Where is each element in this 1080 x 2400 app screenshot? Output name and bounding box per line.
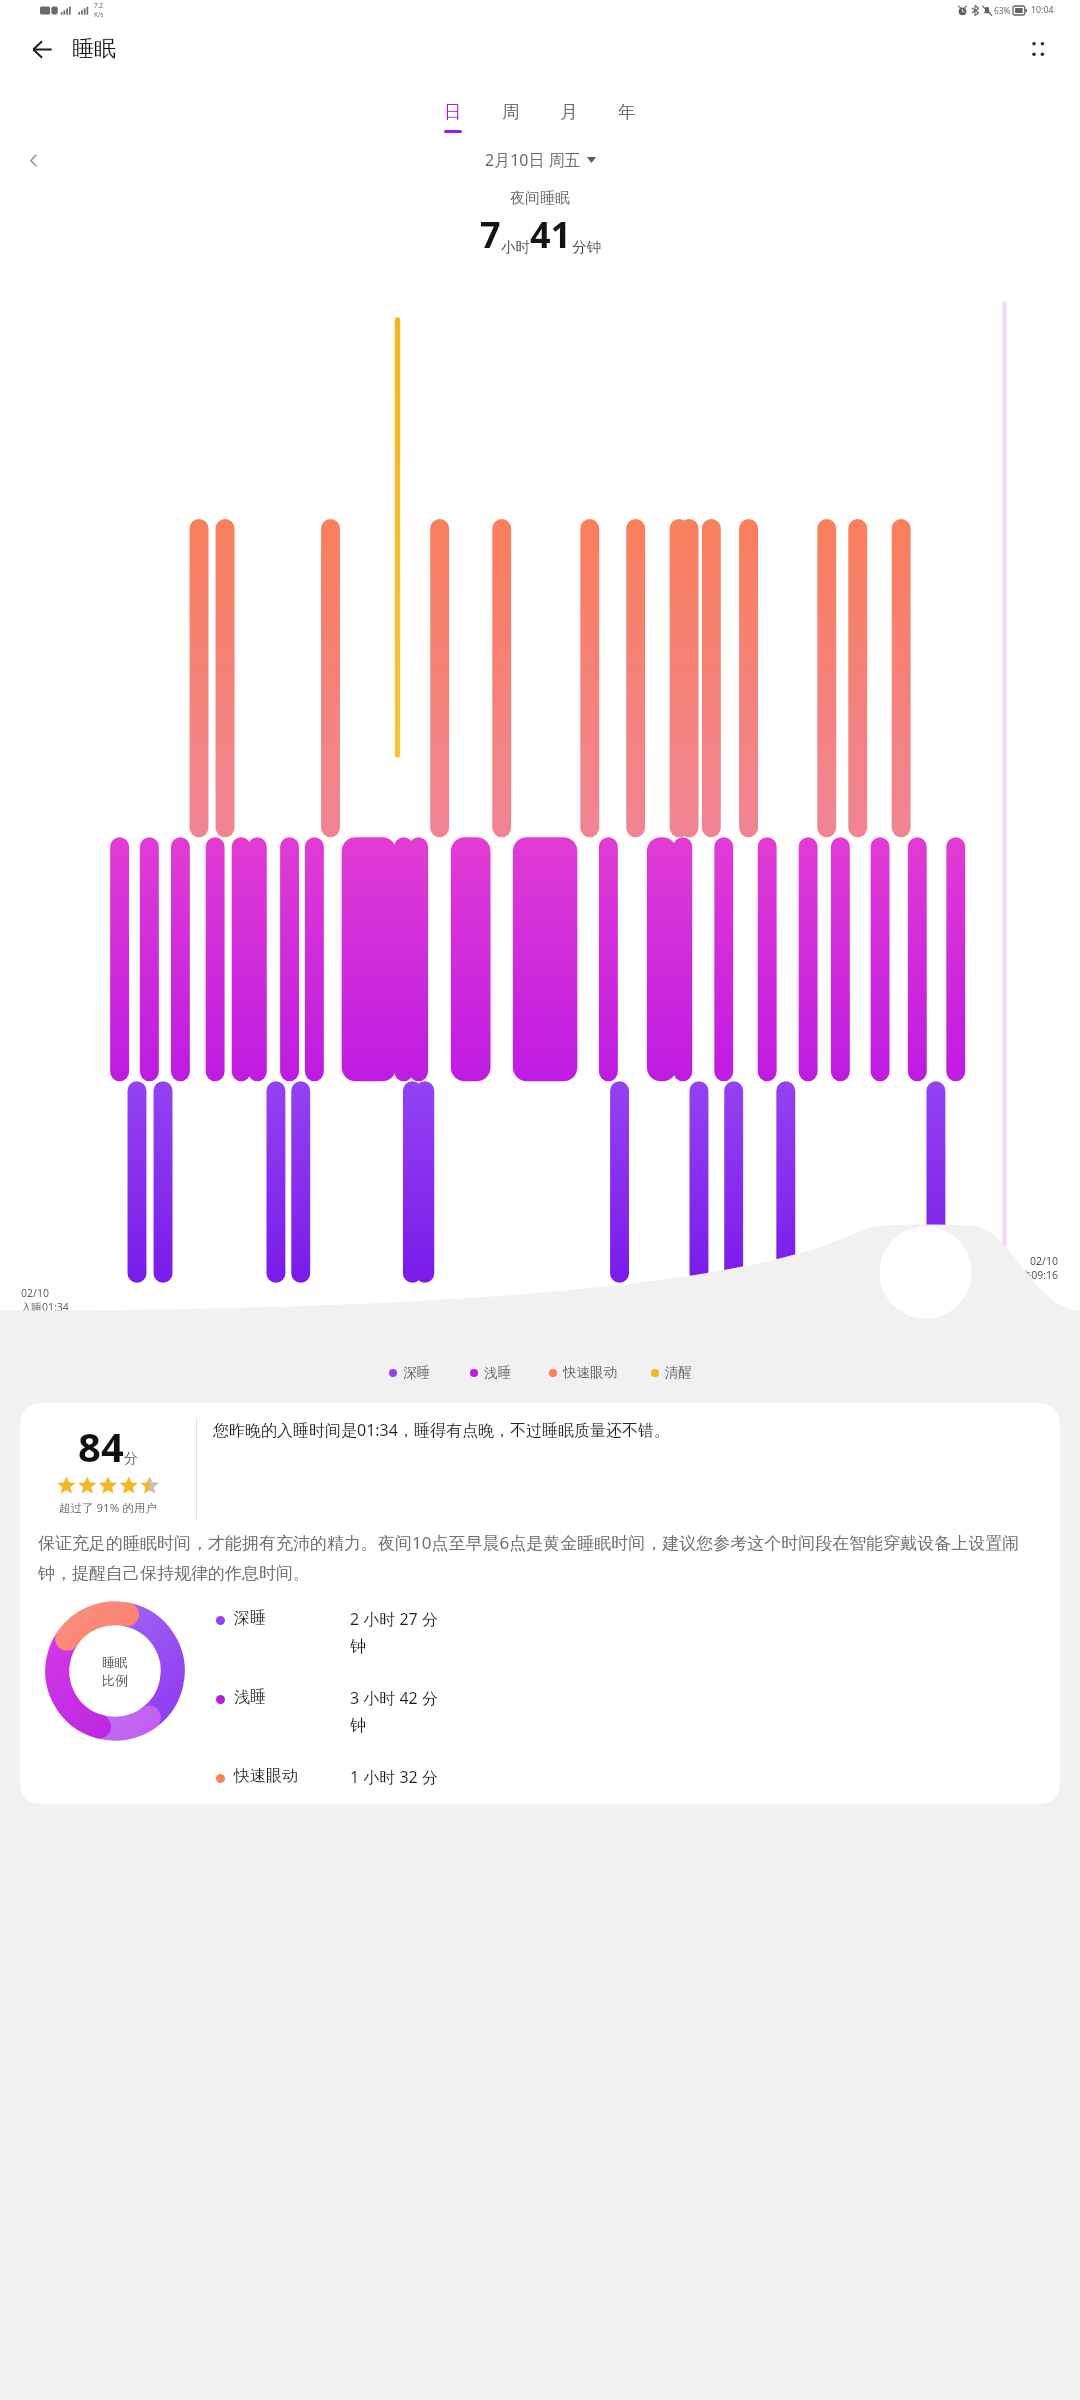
staticText: 7 — [480, 210, 501, 259]
staticText: 夜间睡眠 — [0, 189, 1080, 208]
staticText: 分钟 — [572, 238, 601, 256]
staticText: 清醒 — [665, 1364, 692, 1381]
staticText: 3 小时 42 分 钟 — [350, 1687, 438, 1736]
staticText: 快速眼动 — [563, 1364, 617, 1381]
staticText: K/s — [94, 10, 104, 19]
button[interactable]: 日 — [424, 101, 482, 133]
staticText: 41 — [530, 210, 572, 259]
staticText: 02/10 入睡01:34 — [21, 1286, 69, 1314]
staticText: 2 小时 27 分 钟 — [350, 1608, 438, 1657]
button[interactable]: 年 — [598, 101, 656, 133]
staticText: 月 — [560, 101, 578, 123]
button[interactable]: Back — [20, 27, 64, 71]
staticText: 分 — [124, 1450, 138, 1468]
button[interactable]: Previous day — [12, 145, 54, 175]
staticText: 63% — [994, 5, 1011, 16]
button[interactable]: 2月10日 周五 — [485, 149, 596, 171]
staticText: 02/10 醒来09:16 — [1010, 1254, 1058, 1282]
staticText: 保证充足的睡眠时间，才能拥有充沛的精力。夜间10点至早晨6点是黄金睡眠时间，建议… — [38, 1531, 1042, 1584]
staticText: 快速眼动 — [234, 1766, 350, 1786]
staticText: 日 — [444, 101, 462, 123]
staticText: 84 — [78, 1419, 124, 1473]
button[interactable]: 快速眼动 — [549, 1364, 617, 1381]
button[interactable]: More options — [1016, 27, 1060, 71]
button[interactable]: 月 — [540, 101, 598, 133]
staticText: 1 小时 32 分 — [350, 1766, 438, 1788]
button[interactable]: 浅睡 — [470, 1364, 511, 1381]
staticText: 年 — [618, 101, 636, 123]
staticText: 超过了 91% 的用户 — [59, 1500, 157, 1516]
button[interactable]: 深睡 — [389, 1364, 430, 1381]
staticText: 深睡 — [234, 1608, 350, 1628]
staticText: 睡眠 比例 — [102, 1654, 128, 1689]
staticText: 浅睡 — [234, 1687, 350, 1707]
staticText: 小时 — [501, 238, 530, 256]
button[interactable]: 84 — [20, 1403, 1060, 1804]
button[interactable]: 周 — [482, 101, 540, 133]
staticText: 睡眠 — [72, 35, 116, 63]
staticText: 10:04 — [1031, 4, 1054, 16]
staticText: 浅睡 — [484, 1364, 511, 1381]
staticText: 深睡 — [403, 1364, 430, 1381]
staticText: 您昨晚的入睡时间是01:34，睡得有点晚，不过睡眠质量还不错。 — [213, 1419, 670, 1441]
button[interactable]: 清醒 — [651, 1364, 692, 1381]
staticText: 周 — [502, 101, 520, 123]
staticText: 2月10日 周五 — [485, 149, 581, 171]
staticText: 7.2 — [94, 1, 104, 10]
